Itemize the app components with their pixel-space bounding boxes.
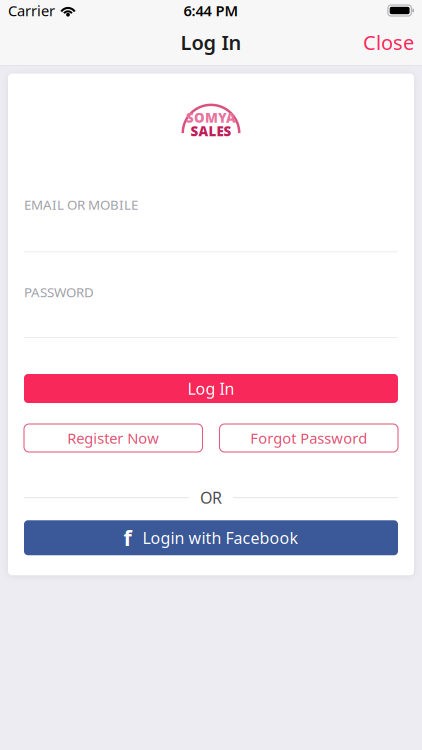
staticText: 6:44 PM xyxy=(183,1,238,20)
staticText: Forgot Password xyxy=(250,428,367,448)
button[interactable]: Forgot Password xyxy=(219,424,398,452)
staticText: Close xyxy=(363,29,414,56)
staticText: Log In xyxy=(180,29,241,56)
staticText: Register Now xyxy=(67,428,159,448)
button[interactable]: Register Now xyxy=(24,424,202,452)
button[interactable]: Log In xyxy=(24,374,398,403)
staticText: Log In xyxy=(187,378,234,399)
staticText: OR xyxy=(200,487,222,508)
staticText: EMAIL OR MOBILE xyxy=(24,196,138,213)
staticText: SALES xyxy=(190,122,231,140)
button[interactable]: f xyxy=(24,520,398,555)
staticText: f xyxy=(123,524,131,552)
staticText: SOMYA xyxy=(186,109,236,126)
staticText: Login with Facebook xyxy=(142,527,298,548)
button[interactable]: Close xyxy=(349,25,422,68)
staticText: PASSWORD xyxy=(24,283,94,301)
staticText: Carrier xyxy=(8,1,55,20)
